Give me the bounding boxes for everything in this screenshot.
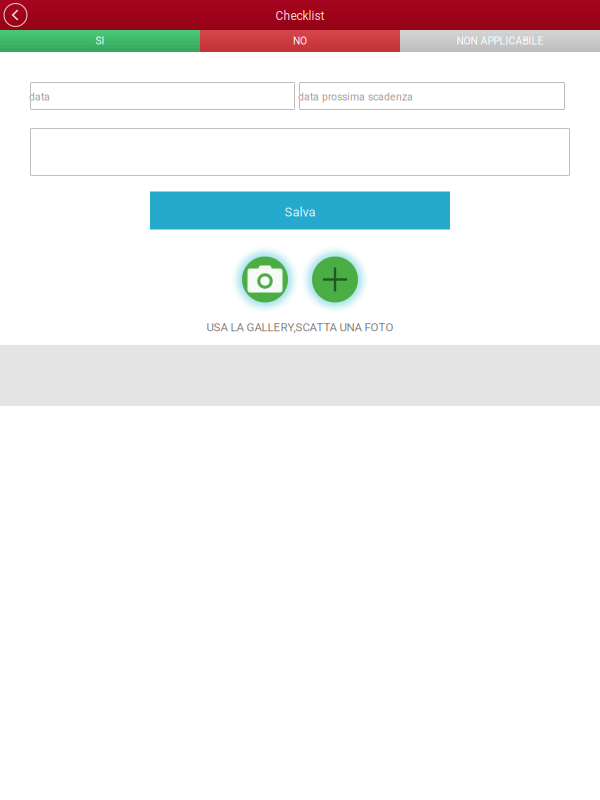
staticText: data prossima scadenza	[298, 91, 413, 103]
staticText: NO	[293, 35, 307, 47]
staticText: NON APPLICABILE	[456, 35, 543, 47]
button[interactable]: NO	[200, 30, 400, 52]
button[interactable]: data prossima scadenza	[299, 82, 564, 109]
staticText: USA LA GALLERY,SCATTA UNA FOTO	[206, 320, 393, 334]
staticText: Salva	[284, 204, 315, 220]
button[interactable]: Back	[0, 0, 27, 29]
button[interactable]: Note	[30, 128, 569, 175]
button[interactable]: Scatta una foto	[300, 244, 370, 314]
button[interactable]: NON APPLICABILE	[400, 30, 600, 52]
button[interactable]: Usa la gallery	[230, 244, 300, 314]
staticText: Checklist	[275, 9, 324, 23]
staticText: SI	[95, 35, 104, 47]
button[interactable]: SI	[0, 30, 200, 52]
staticText: data	[29, 91, 50, 103]
button[interactable]: Salva	[150, 191, 450, 229]
button[interactable]: data	[30, 82, 294, 109]
